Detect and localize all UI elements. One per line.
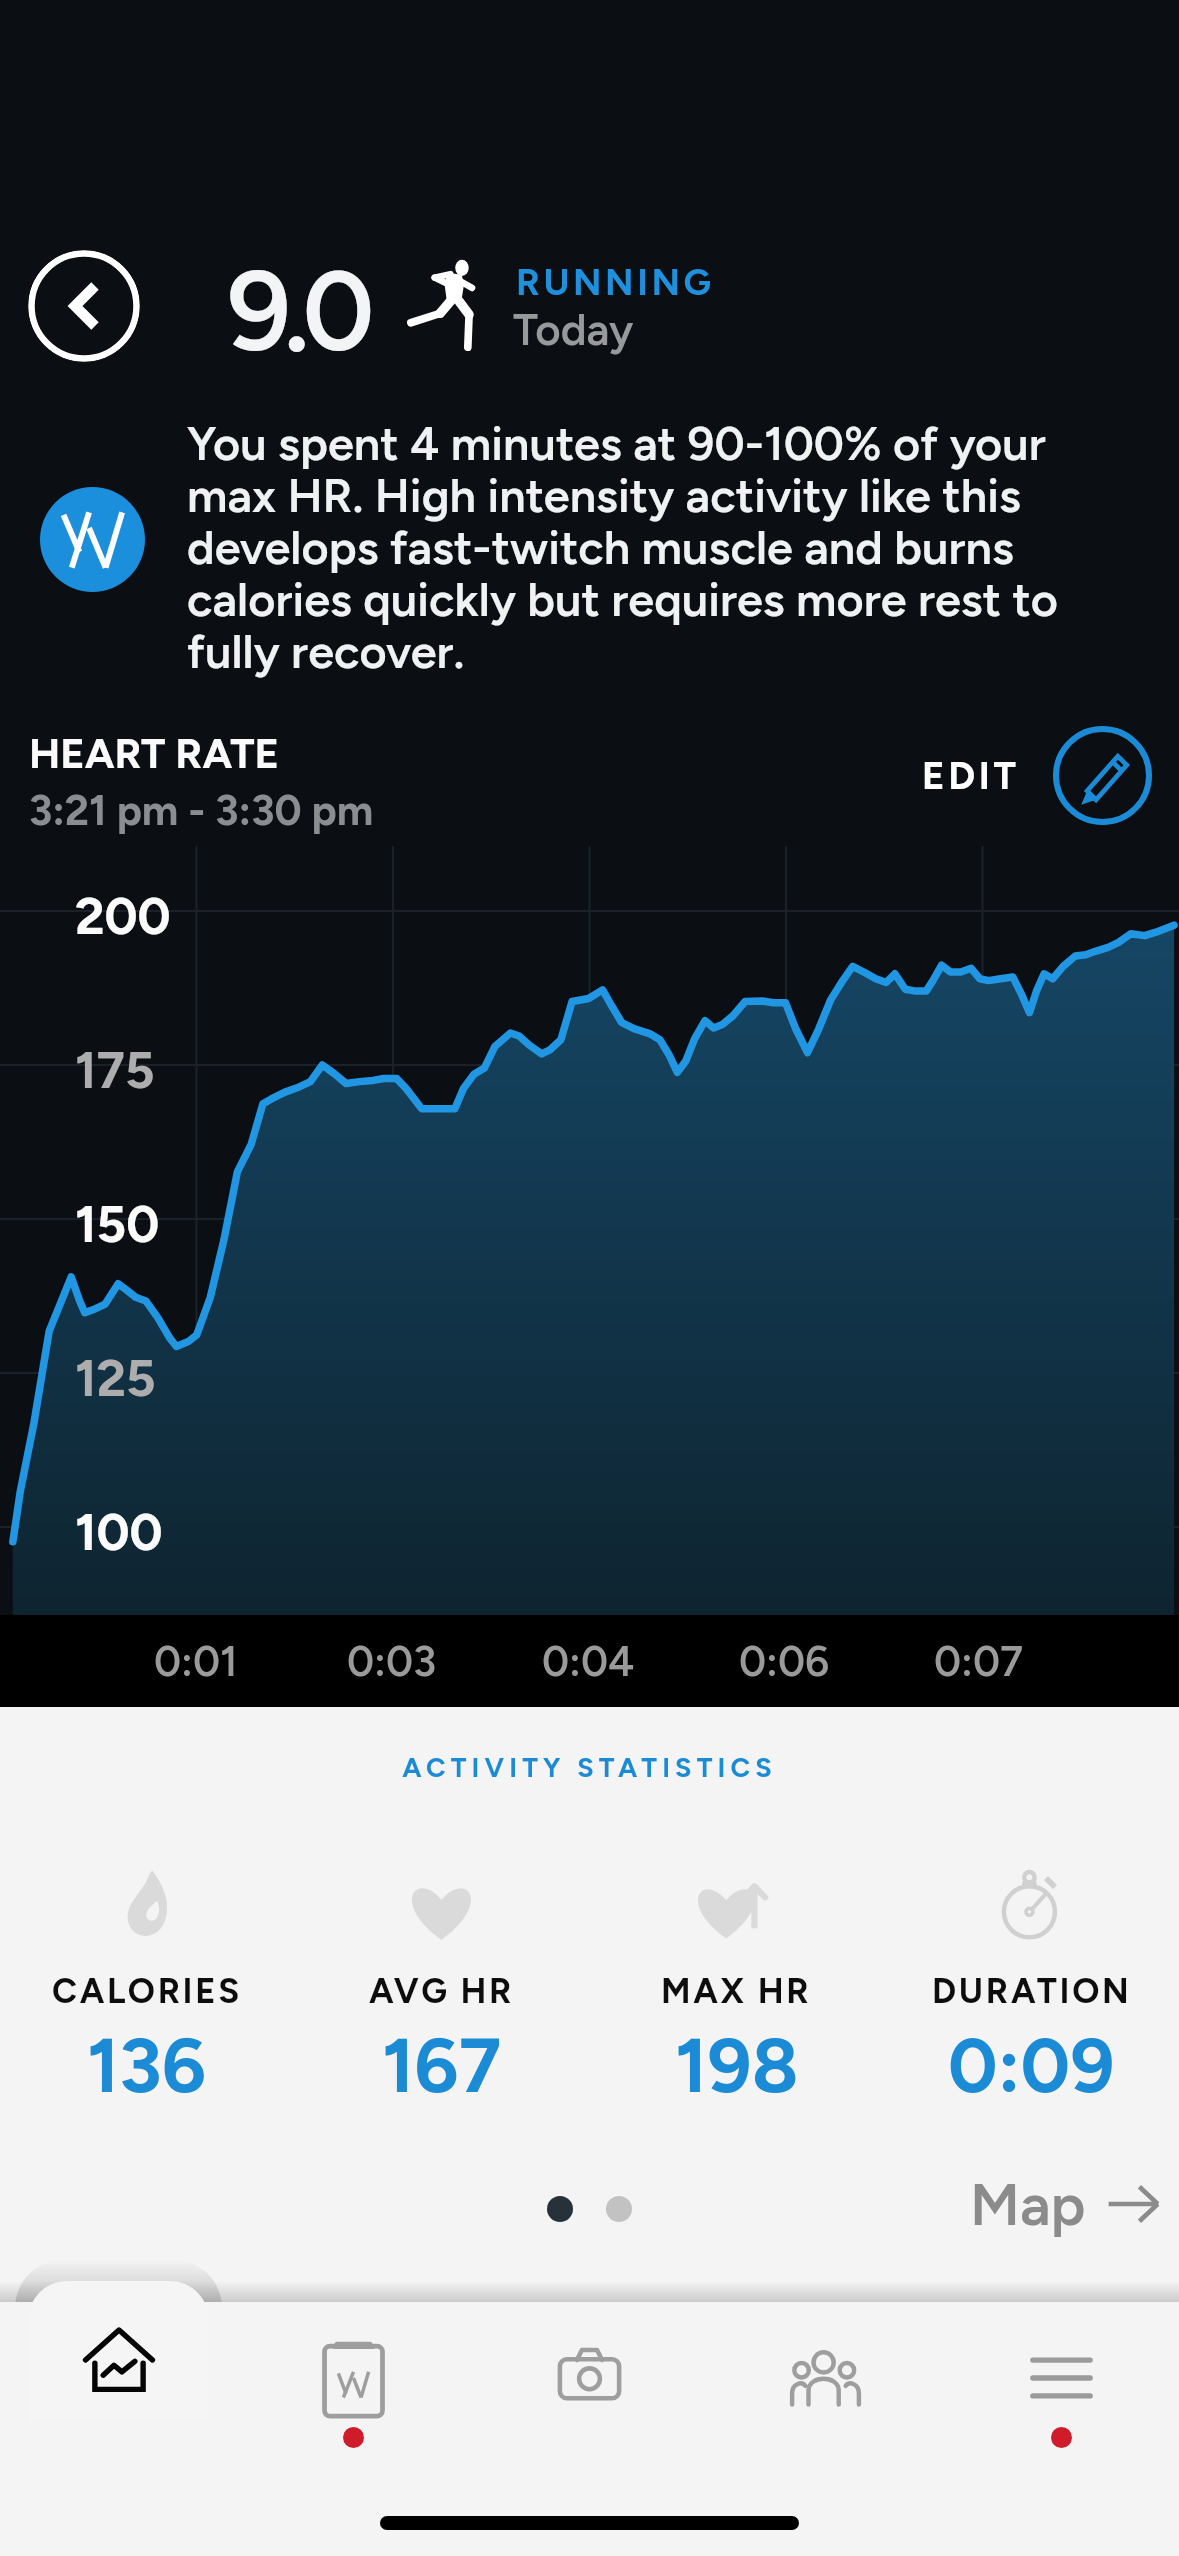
staticText: 136 bbox=[87, 2019, 207, 2111]
staticText: CALORIES bbox=[52, 1970, 242, 2011]
other: Journal bbox=[322, 2339, 385, 2417]
button[interactable]: Community bbox=[707, 2302, 943, 2422]
staticText: 0:09 bbox=[948, 2019, 1115, 2111]
staticText: 200 bbox=[75, 886, 171, 947]
button[interactable]: DURATION bbox=[884, 1869, 1179, 2111]
button[interactable]: Camera bbox=[471, 2302, 707, 2422]
staticText: 0:03 bbox=[347, 1636, 437, 1686]
staticText: EDIT bbox=[922, 753, 1020, 799]
button[interactable]: MAX HR bbox=[589, 1869, 884, 2111]
staticText: 0:04 bbox=[542, 1636, 635, 1686]
button[interactable]: AVG HR bbox=[294, 1869, 589, 2111]
staticText: 9.0 bbox=[227, 244, 368, 378]
button[interactable]: Menu bbox=[943, 2302, 1179, 2422]
staticText: 100 bbox=[75, 1502, 163, 1563]
staticText: 0:07 bbox=[934, 1636, 1024, 1686]
staticText: 125 bbox=[75, 1348, 156, 1409]
button[interactable]: Map bbox=[970, 2163, 1179, 2245]
other: Home bbox=[86, 2339, 149, 2417]
button[interactable]: Home bbox=[0, 2302, 235, 2422]
staticText: 198 bbox=[675, 2019, 799, 2111]
button[interactable]: Back bbox=[28, 250, 140, 362]
staticText: MAX HR bbox=[661, 1970, 812, 2011]
button[interactable]: EDIT bbox=[922, 726, 1179, 825]
staticText: HEART RATE bbox=[29, 728, 280, 778]
staticText: DURATION bbox=[932, 1970, 1132, 2011]
staticText: 0:06 bbox=[739, 1636, 830, 1686]
staticText: Map bbox=[970, 2169, 1086, 2239]
staticText: AVG HR bbox=[369, 1970, 515, 2011]
button[interactable]: Journal bbox=[235, 2302, 471, 2422]
button[interactable]: Home bbox=[28, 2281, 209, 2422]
staticText: 0:01 bbox=[154, 1636, 238, 1686]
staticText: ACTIVITY STATISTICS bbox=[0, 1751, 1179, 1783]
staticText: 150 bbox=[75, 1194, 160, 1255]
other: Camera bbox=[558, 2339, 621, 2417]
staticText: RUNNING bbox=[516, 260, 715, 304]
staticText: 167 bbox=[382, 2019, 502, 2111]
staticText: 3:21 pm - 3:30 pm bbox=[29, 785, 374, 835]
staticText: You spent 4 minutes at 90-100% of your m… bbox=[187, 416, 1072, 680]
other: Community bbox=[794, 2339, 857, 2417]
staticText: Today bbox=[513, 303, 634, 356]
other: Menu bbox=[1030, 2339, 1093, 2417]
staticText: 175 bbox=[75, 1040, 155, 1101]
button[interactable]: CALORIES bbox=[0, 1869, 294, 2111]
